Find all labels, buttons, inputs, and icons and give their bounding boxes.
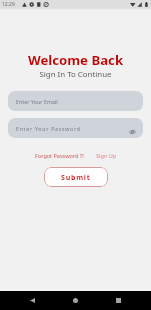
button[interactable]: Sign Up [96, 152, 117, 159]
button[interactable]: Forgot Password ?! [35, 152, 84, 159]
button[interactable]: Home [63, 291, 87, 310]
button[interactable]: Back [20, 291, 44, 310]
staticText: Submit [61, 173, 91, 183]
staticText: Welcome Back [0, 51, 151, 69]
staticText: Sign In To Continue [0, 69, 151, 80]
button[interactable]: Submit [44, 167, 108, 187]
button[interactable]: Enter Your Email [8, 91, 143, 111]
button[interactable]: Enter Your Password [8, 118, 143, 138]
staticText: 12:29 [2, 1, 15, 8]
staticText: Enter Your Password [16, 125, 81, 132]
staticText: Enter Your Email [16, 98, 58, 105]
button[interactable]: Toggle password visibility [126, 126, 138, 138]
button[interactable]: Recent apps [106, 291, 130, 310]
